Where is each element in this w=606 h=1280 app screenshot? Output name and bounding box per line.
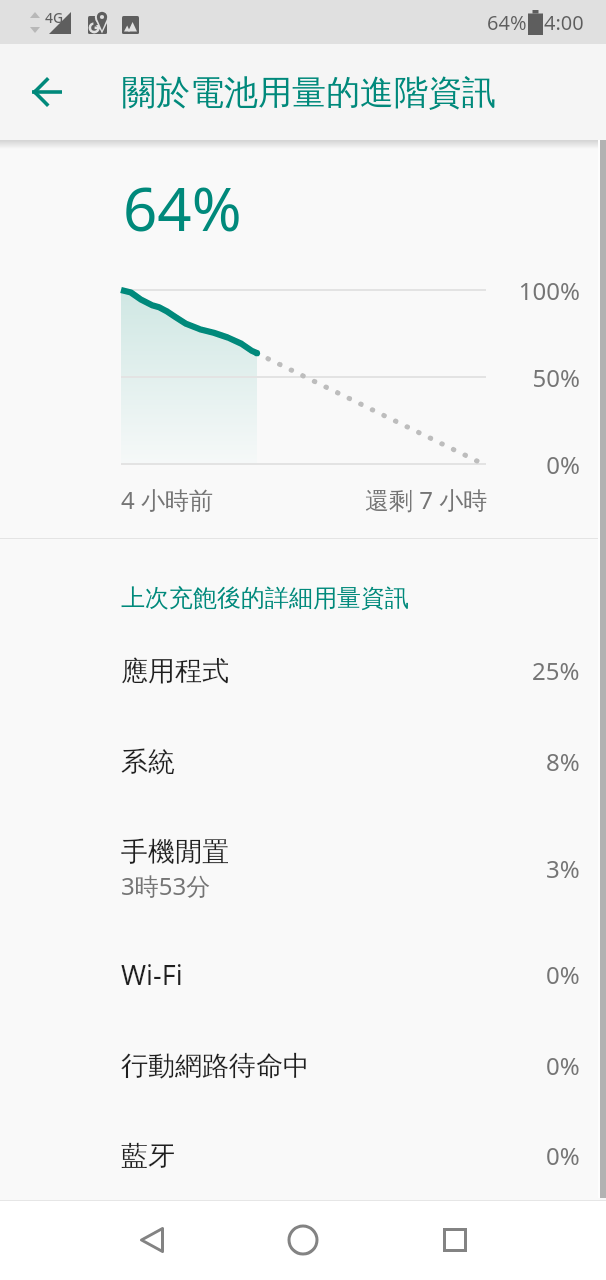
staticText: 系統 [121, 745, 175, 779]
button[interactable]: 行動網路待命中 [0, 1020, 606, 1111]
button[interactable]: 手機閒置 [0, 807, 606, 929]
staticText: 3% [546, 852, 580, 885]
staticText: 64% [123, 167, 242, 249]
staticText: 0% [546, 958, 580, 991]
staticText: 0% [546, 1049, 580, 1082]
staticText: 應用程式 [121, 654, 229, 688]
staticText: 0% [546, 1139, 580, 1172]
staticText: 上次充飽後的詳細用量資訊 [121, 583, 409, 613]
staticText: 50% [532, 361, 580, 394]
staticText: 藍牙 [121, 1139, 175, 1173]
staticText: 4:00 [544, 9, 584, 36]
staticText: 8% [546, 745, 580, 778]
staticText: 25% [532, 654, 580, 687]
staticText: 0% [546, 448, 580, 481]
button[interactable]: 應用程式 [0, 625, 606, 716]
staticText: 還剩 7 小時 [365, 483, 488, 516]
staticText: 關於電池用量的進階資訊 [122, 71, 496, 114]
button[interactable]: Home [263, 1200, 343, 1280]
staticText: 手機閒置 [121, 835, 229, 869]
staticText: 行動網路待命中 [121, 1049, 310, 1083]
staticText: 3時53分 [121, 869, 211, 902]
button[interactable]: 系統 [0, 716, 606, 807]
staticText: 4 小時前 [121, 483, 213, 516]
staticText: 4G [45, 8, 64, 27]
button[interactable]: Recent apps [415, 1200, 495, 1280]
button[interactable]: Back [18, 64, 74, 120]
button[interactable]: 藍牙 [0, 1111, 606, 1200]
staticText: Wi-Fi [121, 956, 183, 993]
staticText: 64% [487, 9, 527, 36]
staticText: 100% [518, 274, 580, 307]
button[interactable]: Back [112, 1200, 192, 1280]
button[interactable]: Wi-Fi [0, 929, 606, 1020]
